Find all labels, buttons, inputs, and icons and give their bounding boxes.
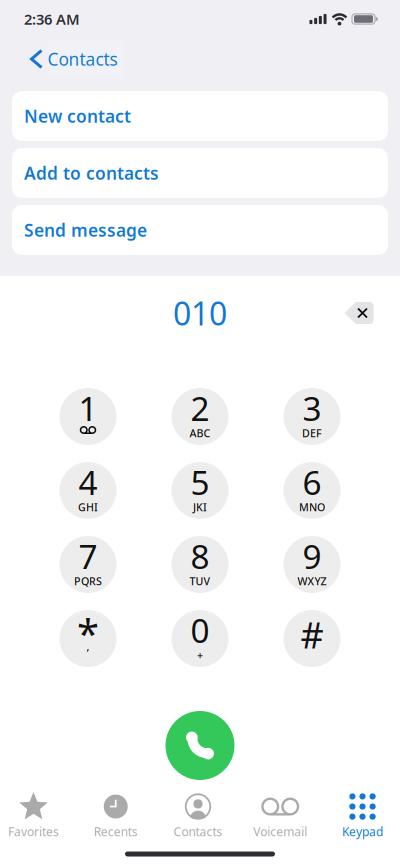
- button[interactable]: Contacts: [31, 37, 123, 80]
- staticText: Recents: [94, 823, 138, 839]
- button[interactable]: 3: [283, 388, 340, 445]
- button[interactable]: Recents: [83, 787, 149, 845]
- button[interactable]: 5: [171, 462, 228, 519]
- button[interactable]: Voicemail: [247, 787, 313, 845]
- button[interactable]: *: [59, 610, 116, 667]
- button[interactable]: 4: [59, 462, 116, 519]
- staticText: 0: [190, 608, 209, 652]
- button[interactable]: New contact: [12, 91, 388, 141]
- staticText: 8: [190, 534, 209, 578]
- staticText: +: [197, 648, 203, 662]
- staticText: 6: [302, 460, 321, 504]
- button[interactable]: 8: [171, 536, 228, 593]
- staticText: 9: [302, 534, 321, 578]
- staticText: #: [300, 611, 323, 658]
- button[interactable]: Keypad: [329, 787, 395, 845]
- button[interactable]: #: [283, 610, 340, 667]
- staticText: 2: [190, 386, 209, 430]
- staticText: 1: [78, 386, 97, 430]
- staticText: 2:36 AM: [24, 9, 80, 29]
- staticText: ABC: [189, 426, 210, 440]
- staticText: *: [77, 606, 99, 659]
- button[interactable]: 6: [283, 462, 340, 519]
- button[interactable]: 0: [171, 610, 228, 667]
- staticText: GHI: [78, 500, 98, 514]
- staticText: MNO: [299, 500, 325, 514]
- button[interactable]: Contacts: [165, 787, 231, 845]
- button[interactable]: Add to contacts: [12, 148, 388, 198]
- staticText: Contacts: [47, 47, 117, 70]
- staticText: WXYZ: [297, 574, 326, 588]
- staticText: PQRS: [74, 574, 102, 588]
- button[interactable]: Delete: [337, 296, 381, 330]
- button[interactable]: 1: [59, 388, 116, 445]
- button[interactable]: 2: [171, 388, 228, 445]
- staticText: Contacts: [173, 823, 222, 839]
- staticText: Voicemail: [253, 823, 307, 839]
- staticText: 3: [302, 386, 321, 430]
- staticText: Favorites: [8, 823, 59, 839]
- staticText: New contact: [24, 104, 131, 127]
- button[interactable]: 7: [59, 536, 116, 593]
- staticText: 4: [78, 460, 97, 504]
- staticText: Send message: [24, 218, 147, 241]
- staticText: 7: [78, 534, 97, 578]
- button[interactable]: Send message: [12, 205, 388, 255]
- button[interactable]: Favorites: [0, 787, 66, 845]
- staticText: 5: [190, 460, 209, 504]
- staticText: 010: [173, 292, 227, 334]
- staticText: Keypad: [342, 823, 383, 839]
- staticText: TUV: [189, 574, 210, 588]
- staticText: Add to contacts: [24, 161, 159, 184]
- staticText: JKI: [193, 500, 207, 514]
- staticText: DEF: [302, 426, 322, 440]
- button[interactable]: Call: [165, 711, 234, 780]
- staticText: ,: [86, 639, 89, 654]
- button[interactable]: 9: [283, 536, 340, 593]
